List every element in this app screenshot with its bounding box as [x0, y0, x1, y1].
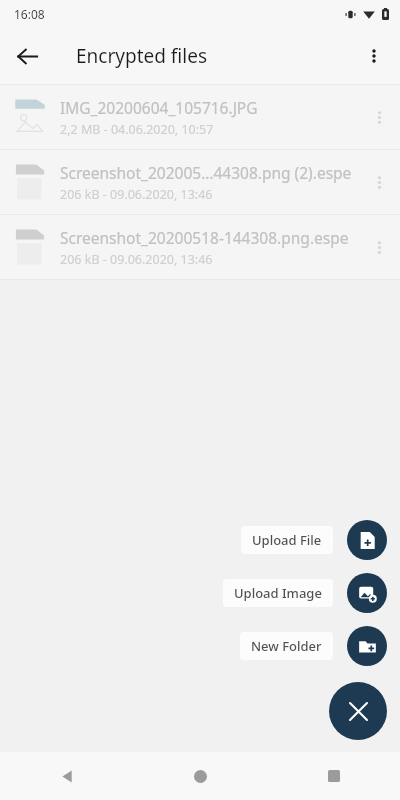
button[interactable]: Home	[134, 752, 267, 800]
button[interactable]: Recents	[267, 752, 400, 800]
button[interactable]: Close menu	[329, 682, 387, 740]
button[interactable]: IMG_20200604_105716.JPG	[0, 85, 400, 149]
button[interactable]: Screenshot_20200518-144308.png.espe	[0, 215, 400, 279]
button[interactable]: Screenshot_202005…44308.png (2).espe	[0, 150, 400, 214]
staticText: IMG_20200604_105716.JPG	[60, 97, 258, 118]
staticText: Upload File	[252, 531, 322, 549]
button[interactable]: Back	[0, 752, 134, 800]
staticText: Screenshot_20200518-144308.png.espe	[60, 227, 349, 248]
staticText: Encrypted files	[76, 43, 208, 69]
staticText: 16:08	[14, 6, 45, 22]
button[interactable]: New Folder	[240, 626, 387, 666]
staticText: Upload Image	[234, 584, 322, 602]
staticText: Screenshot_202005…44308.png (2).espe	[60, 162, 352, 183]
button[interactable]: Upload Image	[223, 573, 387, 613]
staticText: 206 kB - 09.06.2020, 13:46	[60, 251, 213, 268]
button[interactable]: More options	[354, 36, 394, 76]
staticText: 2,2 MB - 04.06.2020, 10:57	[60, 121, 214, 138]
button[interactable]: Upload File	[241, 520, 387, 560]
button[interactable]: Back	[7, 36, 47, 76]
staticText: New Folder	[251, 637, 322, 655]
staticText: 206 kB - 09.06.2020, 13:46	[60, 186, 213, 203]
